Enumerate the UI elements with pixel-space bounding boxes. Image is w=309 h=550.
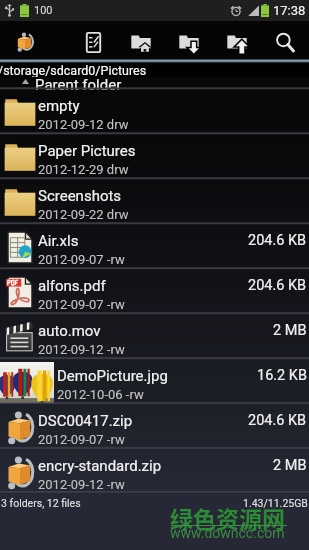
button[interactable]: Paste into folder bbox=[165, 23, 213, 61]
staticText: 2 MB bbox=[273, 322, 307, 339]
staticText: auto.mov bbox=[38, 322, 101, 340]
staticText: 2012-09-07 -rw bbox=[38, 252, 125, 267]
staticText: 3 folders, 12 files bbox=[1, 497, 81, 509]
button[interactable]: alfons.pdf bbox=[0, 270, 309, 315]
button[interactable]: auto.mov bbox=[0, 315, 309, 360]
staticText: 2012-09-12 -rw bbox=[38, 477, 125, 492]
staticText: 2012-09-12 -rw bbox=[38, 342, 125, 357]
staticText: www.downcc.com bbox=[170, 525, 285, 541]
button[interactable]: Parent folder bbox=[0, 63, 309, 90]
staticText: encry-standard.zip bbox=[38, 457, 162, 475]
staticText: 204.6 KB bbox=[248, 277, 307, 294]
staticText: 204.6 KB bbox=[248, 412, 307, 429]
staticText: 2012-09-07 -rw bbox=[38, 297, 125, 312]
staticText: 100 bbox=[34, 4, 53, 17]
button[interactable]: Search bbox=[261, 23, 309, 61]
staticText: empty bbox=[38, 97, 80, 115]
staticText: 2012-10-06 -rw bbox=[57, 387, 144, 402]
staticText: Paper Pictures bbox=[38, 142, 136, 160]
staticText: 16.2 KB bbox=[257, 367, 307, 384]
staticText: Parent folder bbox=[35, 76, 122, 94]
staticText: Screenshots bbox=[38, 187, 122, 205]
staticText: 绿色资源网 bbox=[170, 501, 285, 534]
staticText: 2 MB bbox=[273, 457, 307, 474]
staticText: 2012-09-22 drw bbox=[38, 207, 129, 222]
button[interactable]: empty bbox=[0, 90, 309, 135]
staticText: /storage/sdcard0/Pictures bbox=[0, 63, 147, 77]
button[interactable]: DemoPicture.jpg bbox=[0, 360, 309, 405]
staticText: 204.6 KB bbox=[248, 232, 307, 249]
staticText: 1.43/11.25GB bbox=[243, 497, 308, 509]
staticText: 17:38 bbox=[273, 3, 306, 18]
button[interactable]: encry-standard.zip bbox=[0, 450, 309, 494]
staticText: 2012-09-12 drw bbox=[38, 117, 129, 132]
button[interactable]: Home folder bbox=[117, 23, 165, 61]
button[interactable]: Move to folder bbox=[213, 23, 261, 61]
staticText: 2012-09-07 -rw bbox=[38, 432, 125, 447]
button[interactable]: DSC00417.zip bbox=[0, 405, 309, 450]
button[interactable]: Air.xls bbox=[0, 225, 309, 270]
button[interactable]: Paper Pictures bbox=[0, 135, 309, 180]
staticText: DSC00417.zip bbox=[38, 412, 133, 430]
button[interactable]: Screenshots bbox=[0, 180, 309, 225]
button[interactable]: Task manager bbox=[69, 23, 117, 61]
staticText: 2012-12-29 drw bbox=[38, 162, 129, 177]
staticText: Air.xls bbox=[38, 232, 79, 250]
staticText: DemoPicture.jpg bbox=[57, 367, 168, 385]
button[interactable]: ES File Explorer bbox=[1, 23, 49, 61]
staticText: alfons.pdf bbox=[38, 277, 106, 295]
